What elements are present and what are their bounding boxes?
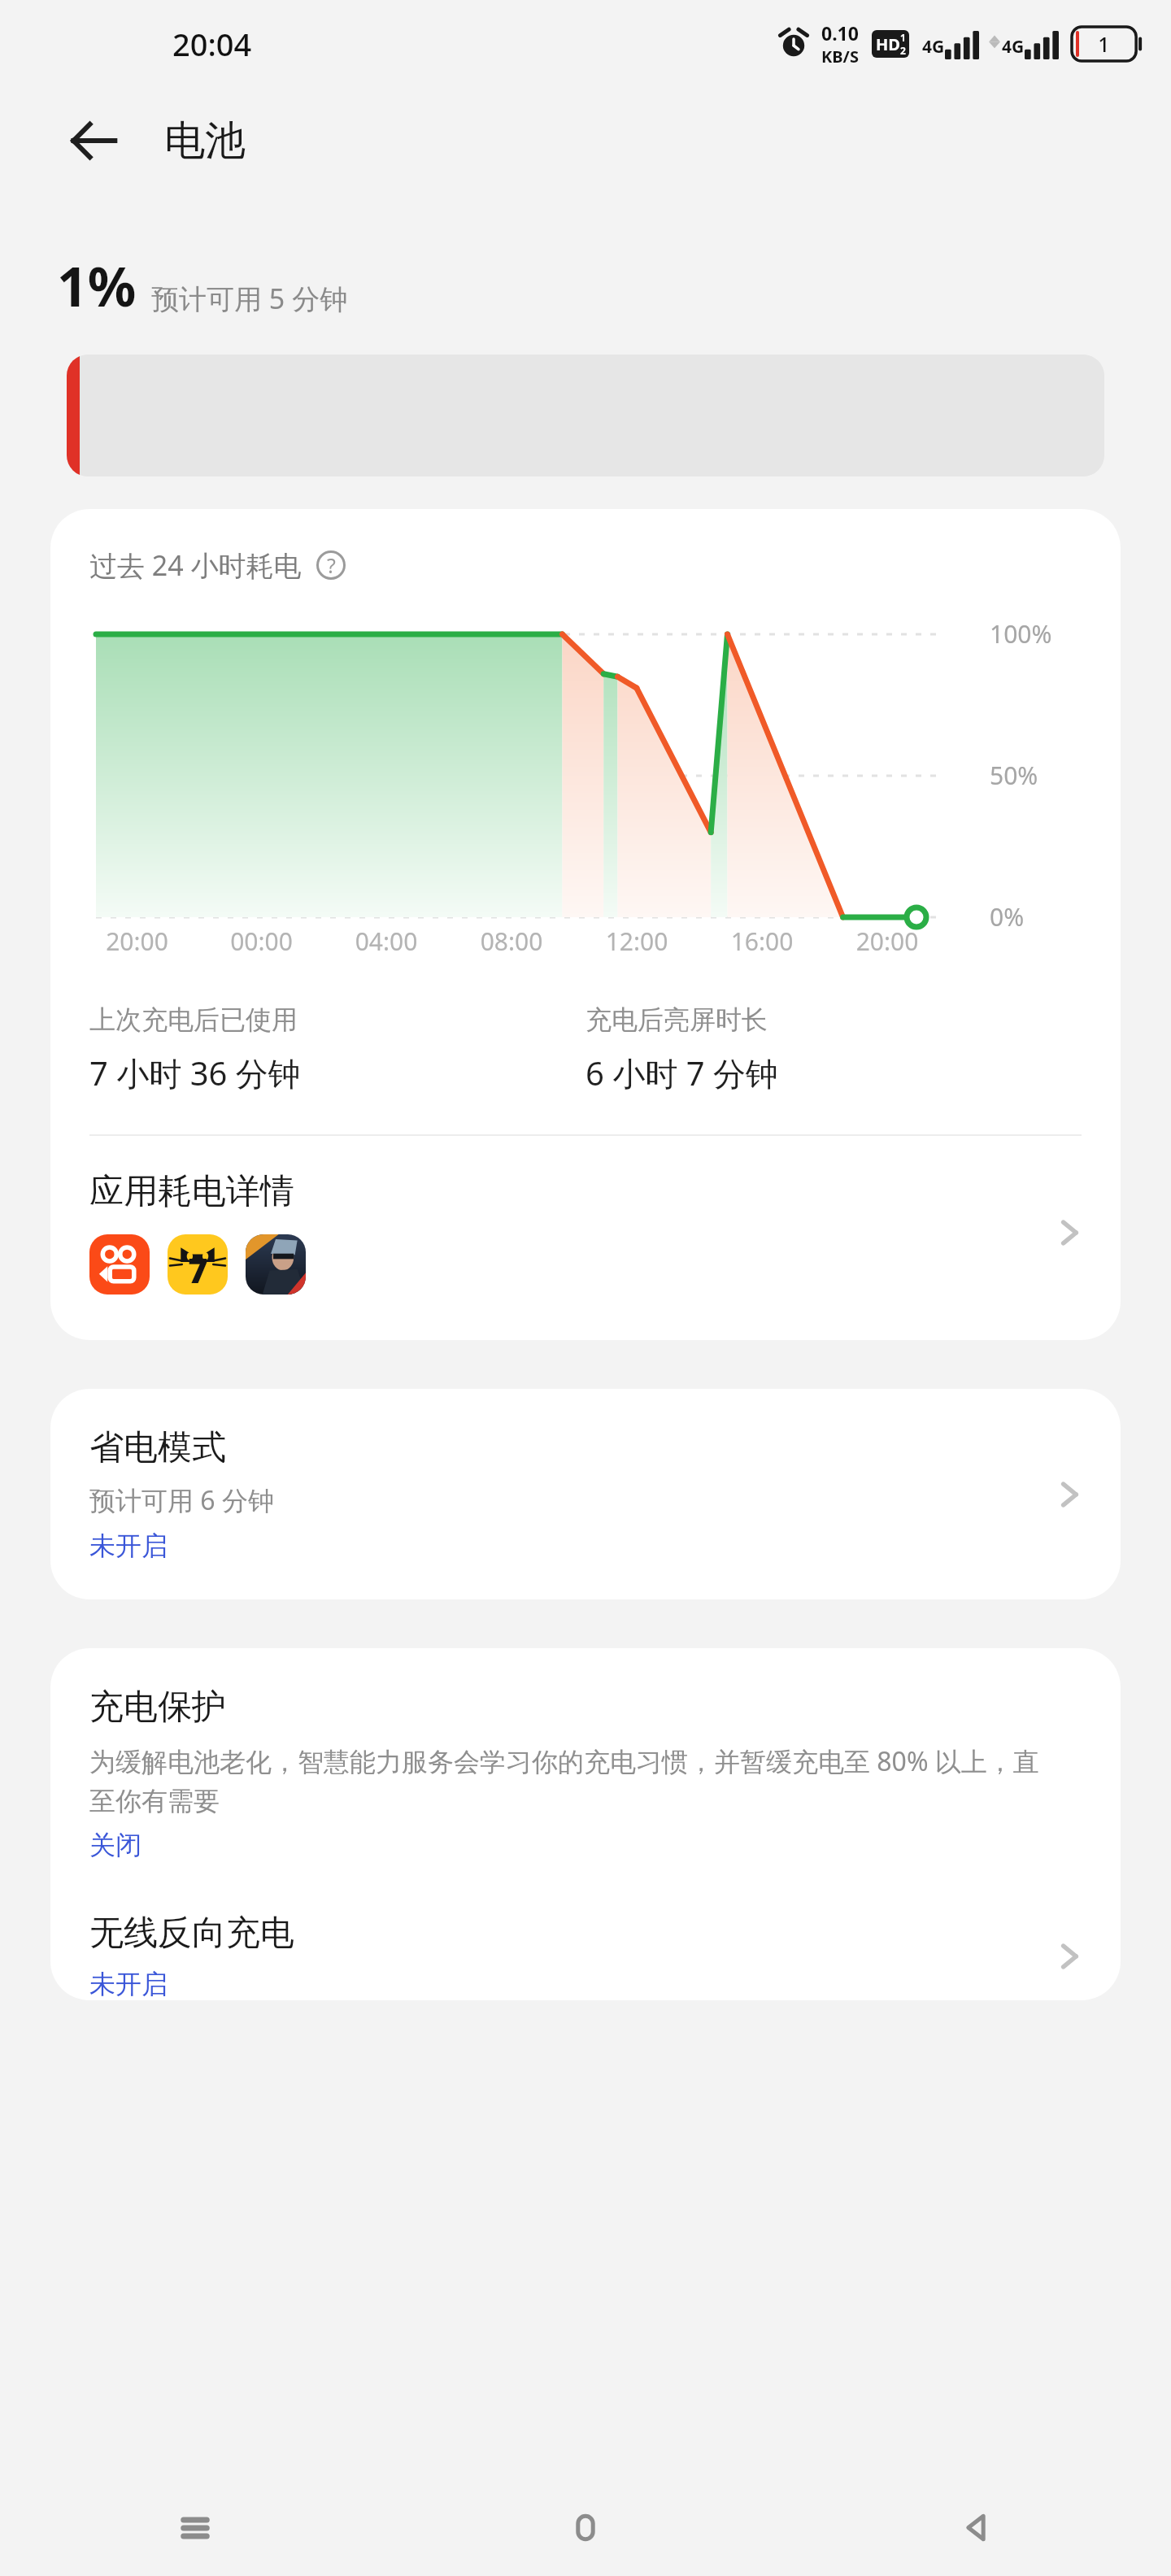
- staticText: 4G: [922, 35, 945, 59]
- staticText: 100%: [990, 617, 1052, 651]
- staticText: 6 小时 7 分钟: [585, 1051, 778, 1095]
- button[interactable]: 无线反向充电: [50, 1891, 1121, 2000]
- staticText: 过去 24 小时耗电: [89, 546, 302, 584]
- staticText: 0%: [990, 900, 1025, 933]
- button[interactable]: Back: [57, 104, 130, 177]
- staticText: KB/S: [821, 46, 859, 67]
- staticText: 未开启: [89, 1968, 168, 2000]
- staticText: 省电模式: [89, 1426, 226, 1469]
- staticText: 4G: [1002, 35, 1025, 59]
- other: Open: [1051, 1214, 1088, 1251]
- staticText: 1%: [57, 249, 137, 322]
- staticText: 16:00: [699, 925, 825, 958]
- staticText: 0.10: [821, 20, 859, 46]
- staticText: 预计可用 5 分钟: [151, 280, 348, 317]
- staticText: 充电保护: [89, 1686, 226, 1729]
- other: Open: [1051, 1938, 1088, 1975]
- staticText: 为缓解电池老化，智慧能力服务会学习你的充电习惯，并暂缓充电至 80% 以上，直至…: [89, 1743, 1048, 1817]
- staticText: 1: [1072, 30, 1136, 58]
- staticText: 1: [900, 31, 906, 44]
- staticText: 7 小时 36 分钟: [89, 1051, 301, 1095]
- staticText: 上次充电后已使用: [89, 1003, 298, 1036]
- staticText: 08:00: [449, 925, 574, 958]
- staticText: 应用耗电详情: [89, 1170, 294, 1213]
- button[interactable]: Recents: [0, 2480, 390, 2576]
- button[interactable]: 应用耗电详情: [50, 1136, 1121, 1303]
- staticText: ?: [327, 551, 336, 579]
- button[interactable]: Help: [313, 547, 349, 583]
- staticText: 12:00: [574, 925, 699, 958]
- staticText: 预计可用 6 分钟: [89, 1482, 274, 1518]
- staticText: 充电后亮屏时长: [585, 1003, 768, 1036]
- staticText: 04:00: [324, 925, 449, 958]
- staticText: HD: [876, 33, 900, 55]
- staticText: 7: [188, 1247, 208, 1293]
- staticText: 50%: [990, 759, 1038, 792]
- staticText: 关闭: [89, 1829, 141, 1861]
- button[interactable]: Back: [781, 2480, 1171, 2576]
- button[interactable]: 充电保护: [50, 1648, 1121, 1891]
- staticText: 电池: [164, 115, 246, 167]
- staticText: 20:04: [172, 23, 252, 65]
- other: Open: [1051, 1476, 1088, 1513]
- staticText: 20:00: [75, 925, 199, 958]
- staticText: 2: [900, 44, 906, 57]
- staticText: 无线反向充电: [89, 1912, 294, 1955]
- staticText: 未开启: [89, 1529, 168, 1562]
- staticText: 20:00: [825, 925, 950, 958]
- button[interactable]: Home: [390, 2480, 781, 2576]
- button[interactable]: 省电模式: [50, 1389, 1121, 1599]
- staticText: 00:00: [199, 925, 324, 958]
